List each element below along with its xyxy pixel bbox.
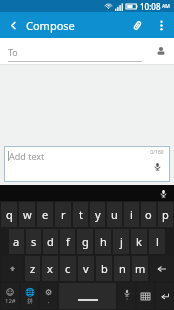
staticText: 12# <box>5 297 16 305</box>
button[interactable]: w <box>19 202 35 227</box>
staticText: To <box>8 46 18 58</box>
button[interactable]: z <box>25 256 40 281</box>
staticText: i <box>130 207 133 222</box>
staticText: x <box>47 261 53 276</box>
staticText: z <box>30 261 36 276</box>
button[interactable]: g <box>77 229 93 254</box>
button[interactable]: s <box>26 229 41 254</box>
button[interactable]: More options <box>150 14 172 36</box>
button[interactable]: n <box>114 256 130 281</box>
button[interactable]: a <box>9 229 24 254</box>
button[interactable]: Add text <box>4 146 170 182</box>
button[interactable]: y <box>90 202 105 227</box>
button[interactable]: Backspace <box>150 256 173 281</box>
button[interactable]: Voice input <box>148 159 166 173</box>
staticText: AM <box>162 3 170 10</box>
staticText: y <box>95 207 101 222</box>
staticText: u <box>111 207 118 222</box>
button[interactable]: Voice typing <box>157 187 169 199</box>
staticText: o <box>145 207 152 222</box>
staticText: m <box>135 261 146 276</box>
staticText: h <box>100 234 107 249</box>
staticText: f <box>66 234 70 249</box>
staticText: g <box>82 234 89 249</box>
button[interactable]: p <box>158 202 173 227</box>
button[interactable]: r <box>55 202 71 227</box>
button[interactable]: Symbols <box>1 283 19 309</box>
button[interactable]: k <box>131 229 147 254</box>
button[interactable]: j <box>113 229 129 254</box>
button[interactable]: Space <box>59 283 116 309</box>
button[interactable]: Back <box>0 12 26 38</box>
button[interactable]: u <box>107 202 122 227</box>
button[interactable]: v <box>78 256 94 281</box>
button[interactable]: Add recipient from contacts <box>148 38 174 64</box>
staticText: 10:08 <box>140 1 161 12</box>
button[interactable]: o <box>141 202 156 227</box>
button[interactable]: Shift <box>1 256 23 281</box>
staticText: 0/160 <box>150 149 164 156</box>
staticText: l <box>156 234 159 249</box>
button[interactable]: m <box>132 256 148 281</box>
staticText: d <box>47 234 54 249</box>
staticText: n <box>119 261 126 276</box>
staticText: 拼 <box>27 297 33 305</box>
button[interactable]: Settings <box>40 283 57 309</box>
button[interactable]: Enter <box>156 283 173 309</box>
staticText: a <box>13 234 20 249</box>
staticText: v <box>83 261 89 276</box>
button[interactable]: q <box>1 202 17 227</box>
staticText: t <box>79 207 83 222</box>
button[interactable]: b <box>96 256 112 281</box>
staticText: p <box>162 207 169 222</box>
staticText: s <box>31 234 37 249</box>
staticText: j <box>120 234 123 249</box>
button[interactable]: t <box>73 202 88 227</box>
staticText: b <box>101 261 108 276</box>
staticText: w <box>23 207 32 222</box>
button[interactable]: To <box>8 38 142 64</box>
staticText: Compose <box>26 18 75 33</box>
staticText: ° <box>126 297 129 304</box>
button[interactable]: Change language <box>21 283 38 309</box>
button[interactable]: e <box>37 202 53 227</box>
button[interactable]: f <box>60 229 75 254</box>
button[interactable]: l <box>149 229 165 254</box>
button[interactable]: d <box>43 229 58 254</box>
staticText: Add text <box>9 150 45 162</box>
staticText: ☺ <box>6 288 15 297</box>
button[interactable]: x <box>42 256 58 281</box>
button[interactable]: h <box>95 229 111 254</box>
staticText: c <box>65 261 71 276</box>
staticText: 🌐 <box>25 288 35 297</box>
button[interactable]: Voice input <box>118 283 135 309</box>
button[interactable]: Attach <box>124 12 150 38</box>
button[interactable]: c <box>60 256 76 281</box>
staticText: , <box>48 297 50 305</box>
staticText: e <box>42 207 49 222</box>
staticText: k <box>136 234 142 249</box>
staticText: ⚙ <box>45 288 53 297</box>
staticText: r <box>61 207 66 222</box>
button[interactable]: Keyboard layout <box>137 283 154 309</box>
staticText: q <box>6 207 13 222</box>
button[interactable]: i <box>124 202 139 227</box>
